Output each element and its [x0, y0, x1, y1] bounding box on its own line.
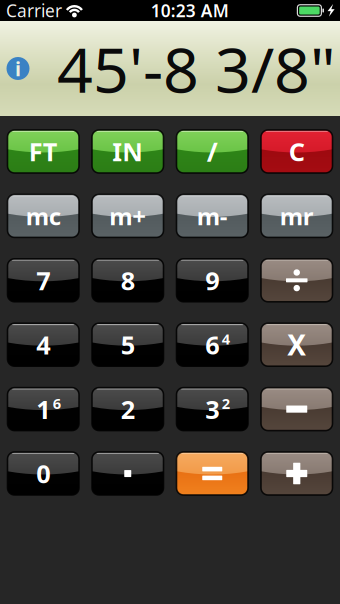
button[interactable]: 5 [92, 323, 163, 366]
button[interactable]: 4 [7, 323, 79, 366]
staticText: 45'-8 3/8" [57, 27, 336, 110]
staticText: mr [280, 200, 314, 232]
button[interactable]: 0 [7, 452, 79, 495]
staticText: C [289, 135, 305, 168]
staticText: 4 [222, 329, 230, 349]
button[interactable]: X [261, 323, 332, 366]
staticText: 0 [36, 457, 50, 490]
staticText: IN [112, 135, 143, 168]
button[interactable]: m+ [92, 194, 163, 237]
button[interactable]: IN [92, 130, 163, 173]
staticText: 5 [121, 328, 135, 361]
button[interactable] [261, 388, 332, 431]
button[interactable] [92, 452, 163, 495]
button[interactable]: 2 [92, 388, 163, 431]
staticText: Carrier [6, 0, 62, 22]
staticText: FT [29, 135, 58, 168]
button[interactable] [176, 452, 248, 495]
button[interactable]: 7 [7, 259, 79, 302]
staticText: 9 [205, 263, 219, 297]
staticText: 7 [36, 263, 50, 297]
staticText: m- [197, 200, 228, 232]
staticText: / [207, 134, 218, 169]
staticText: 4 [36, 328, 50, 361]
button[interactable] [261, 452, 332, 495]
button[interactable]: mc [7, 194, 79, 237]
button[interactable]: 9 [176, 259, 248, 302]
staticText: m+ [109, 200, 146, 232]
staticText: 2 [121, 392, 135, 426]
button[interactable] [261, 259, 332, 302]
button[interactable]: 1 [7, 388, 79, 431]
staticText: 6 [205, 328, 219, 361]
button[interactable]: mr [261, 194, 332, 237]
button[interactable]: 3 [176, 388, 248, 431]
staticText: 3 [205, 392, 219, 426]
button[interactable]: 6 [176, 323, 248, 366]
button[interactable]: C [261, 130, 332, 173]
button[interactable]: 8 [92, 259, 163, 302]
staticText: X [287, 326, 306, 363]
staticText: mc [26, 200, 61, 232]
button[interactable]: / [176, 130, 248, 173]
button[interactable]: FT [7, 130, 79, 173]
staticText: i [15, 55, 21, 82]
button[interactable]: m- [176, 194, 248, 237]
button[interactable]: Info [3, 53, 33, 83]
staticText: 2 [222, 393, 230, 413]
staticText: 6 [53, 393, 61, 413]
staticText: 1 [36, 392, 50, 426]
staticText: 8 [121, 263, 135, 297]
staticText: 10:23 AM [151, 0, 229, 22]
